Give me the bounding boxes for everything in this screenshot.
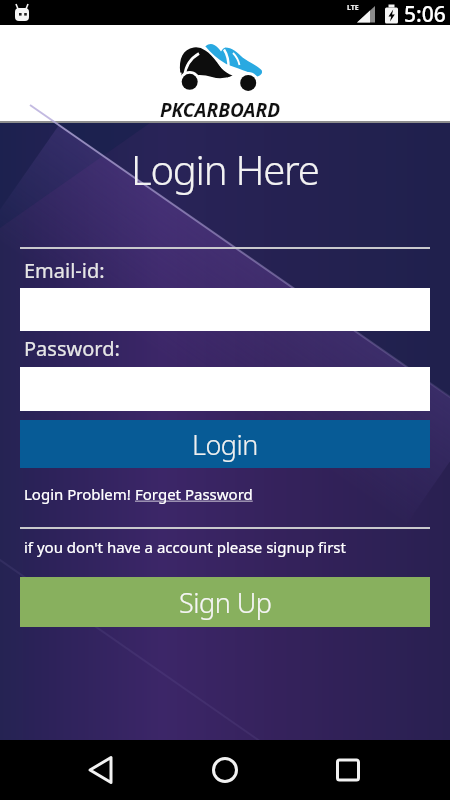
staticText: Email-id: xyxy=(24,257,105,284)
staticText: PKCARBOARD xyxy=(160,97,281,123)
button[interactable]: Sign Up xyxy=(20,577,430,627)
button[interactable] xyxy=(318,740,378,800)
button[interactable]: Forget Password xyxy=(135,484,253,504)
staticText: Sign Up xyxy=(179,584,272,621)
button[interactable] xyxy=(195,740,255,800)
staticText: Login xyxy=(192,426,258,463)
button[interactable]: Login xyxy=(20,420,430,468)
staticText: Login Here xyxy=(131,142,319,196)
button[interactable] xyxy=(71,740,131,800)
staticText: Login Problem! xyxy=(24,484,135,504)
staticText: if you don't have a account please signu… xyxy=(24,537,346,557)
staticText: Password: xyxy=(24,335,120,362)
staticText: LTE xyxy=(347,3,359,13)
staticText: 5:06 xyxy=(404,0,446,25)
